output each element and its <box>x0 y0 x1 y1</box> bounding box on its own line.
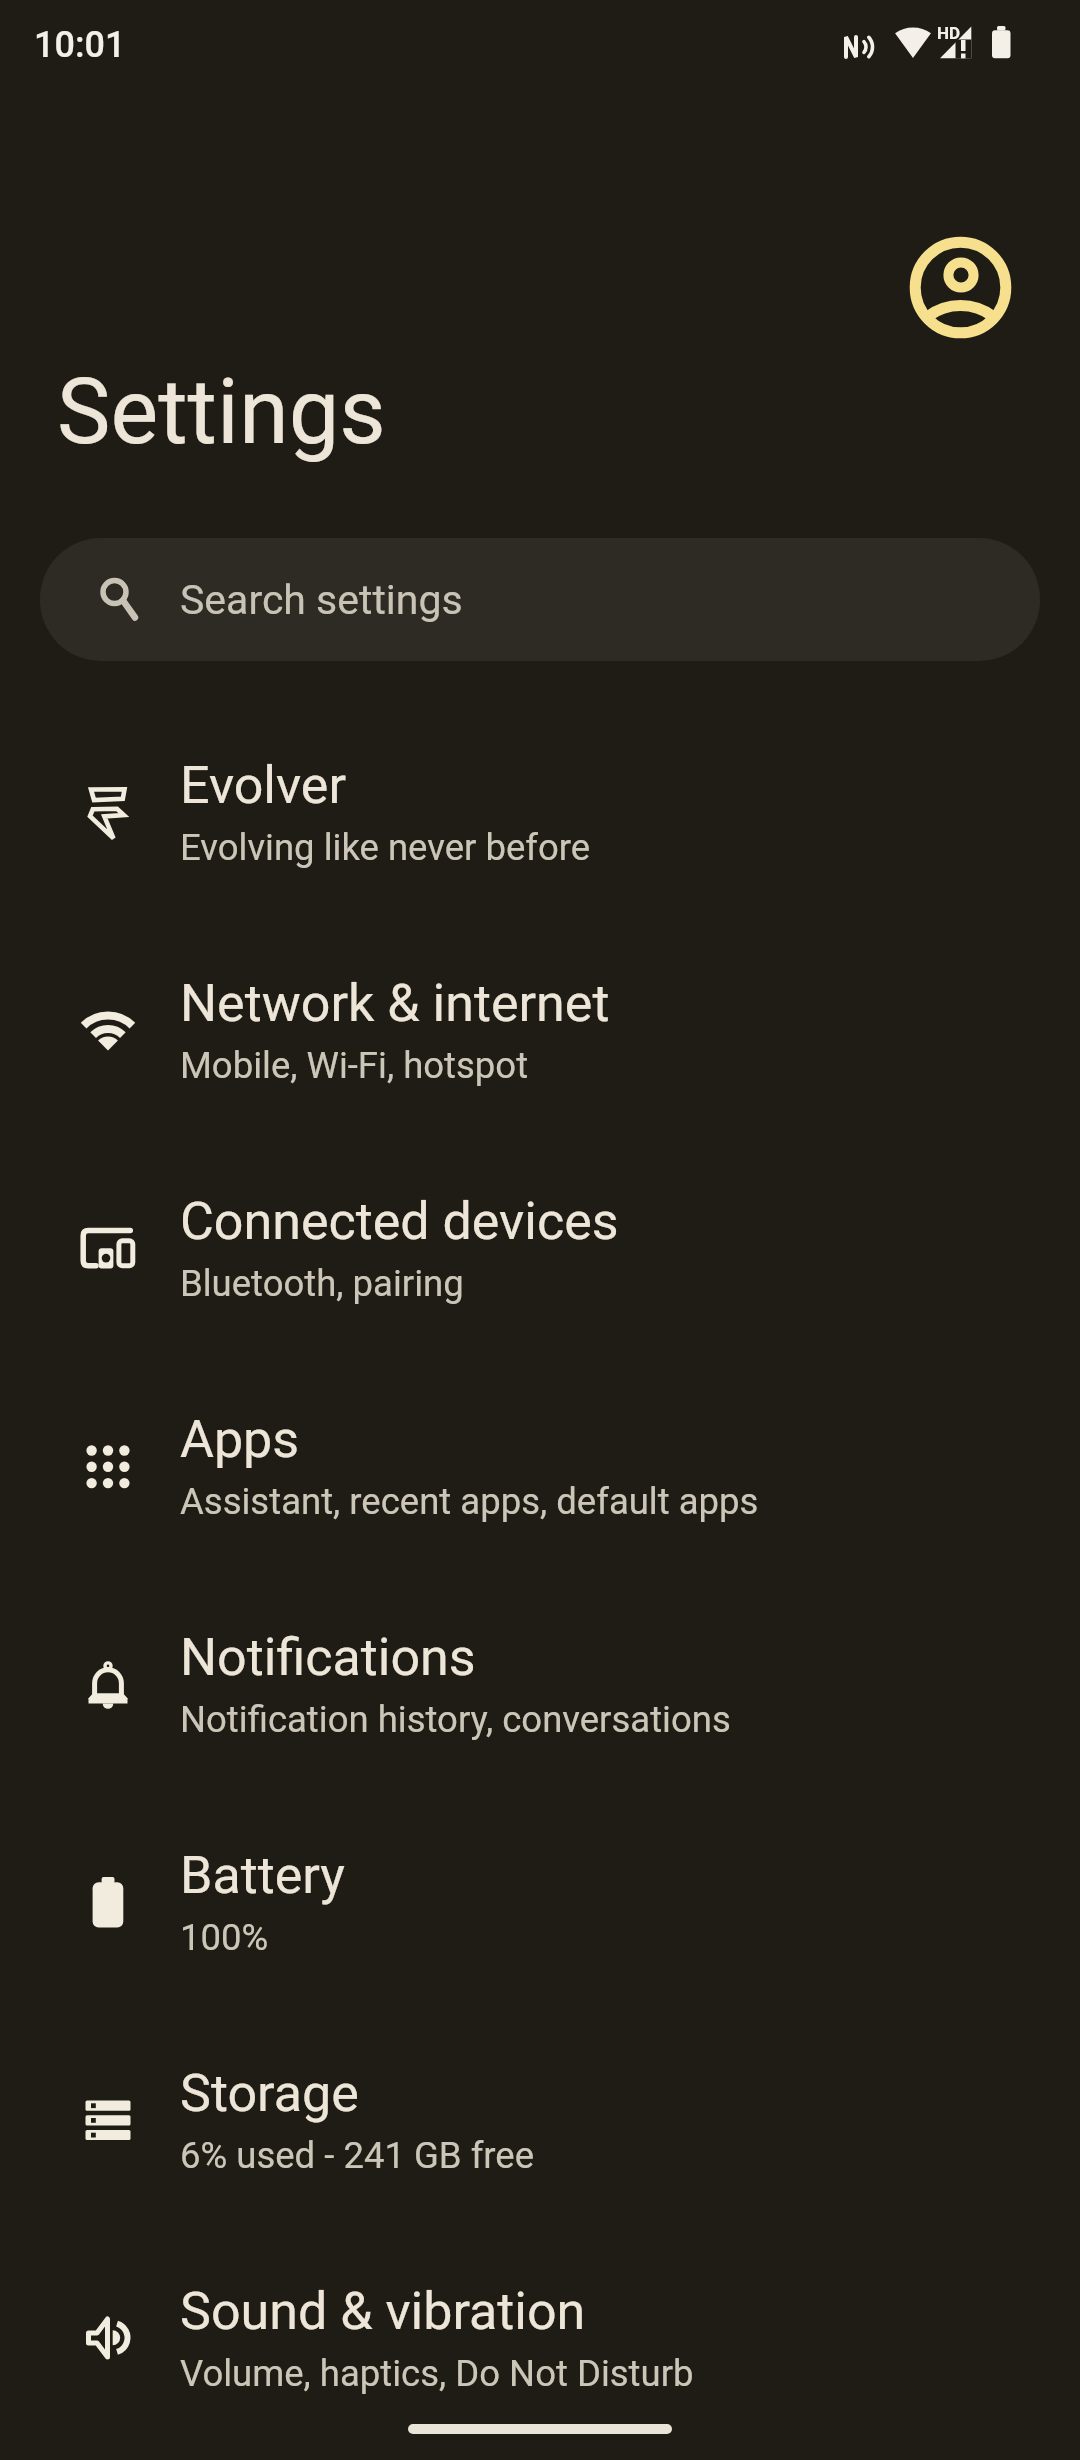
button[interactable]: Connected devices <box>0 1144 1080 1362</box>
button[interactable]: Evolver <box>0 708 1080 926</box>
button[interactable]: Storage <box>0 2016 1080 2234</box>
staticText: Battery <box>180 1845 345 1906</box>
staticText: Bluetooth, pairing <box>180 1262 464 1305</box>
button[interactable]: Apps <box>0 1362 1080 1580</box>
button[interactable] <box>908 235 1013 340</box>
staticText: HD <box>937 23 961 43</box>
staticText: Network & internet <box>180 973 610 1034</box>
staticText: Notification history, conversations <box>180 1698 731 1741</box>
staticText: Apps <box>180 1409 300 1470</box>
staticText: Storage <box>180 2063 359 2124</box>
button[interactable]: Search settings <box>40 538 1040 661</box>
button[interactable]: Battery <box>0 1798 1080 2016</box>
staticText: 100% <box>180 1916 269 1959</box>
button[interactable]: Sound & vibration <box>0 2234 1080 2452</box>
staticText: Search settings <box>180 576 463 624</box>
button[interactable]: Network & internet <box>0 926 1080 1144</box>
staticText: Notifications <box>180 1627 476 1688</box>
staticText: Connected devices <box>180 1191 619 1252</box>
staticText: Volume, haptics, Do Not Disturb <box>180 2352 694 2395</box>
staticText: Mobile, Wi-Fi, hotspot <box>180 1044 529 1087</box>
staticText: 10:01 <box>34 24 126 66</box>
staticText: 6% used - 241 GB free <box>180 2134 535 2177</box>
staticText: Sound & vibration <box>180 2281 586 2342</box>
button[interactable]: Notifications <box>0 1580 1080 1798</box>
staticText: Assistant, recent apps, default apps <box>180 1480 759 1523</box>
staticText: Evolving like never before <box>180 826 591 869</box>
staticText: Settings <box>57 360 386 465</box>
staticText: Evolver <box>180 755 347 816</box>
